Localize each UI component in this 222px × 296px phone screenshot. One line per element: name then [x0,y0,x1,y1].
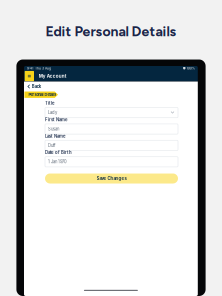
button[interactable]: Save Changes [45,173,178,183]
staticText: First Name [45,117,68,122]
staticText: Susan [48,126,59,131]
button[interactable]: Personal Details [24,91,58,98]
staticText: My Account [39,73,67,79]
staticText: 1 Jan 1970 [48,159,67,164]
staticText: Date of Birth [45,150,72,155]
staticText: Back [32,84,41,89]
staticText: Title [45,101,55,106]
button[interactable]: Home [25,71,34,81]
button[interactable]: Back [24,81,41,91]
staticText: 9:41 Thu 3 Aug [27,66,51,70]
staticText: Personal Details [28,92,56,97]
staticText: ● 100% [183,66,195,70]
staticText: Duff [48,143,56,148]
staticText: Lady [48,110,57,115]
staticText: Last Name [45,133,66,139]
staticText: Save Changes [96,176,126,181]
staticText: Edit Personal Details [45,23,176,40]
